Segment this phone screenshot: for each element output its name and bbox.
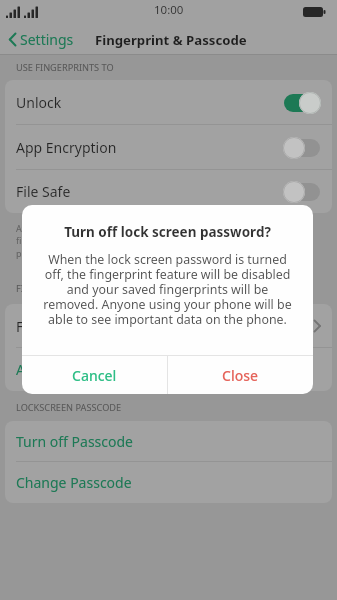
button[interactable] [283,181,321,203]
button[interactable]: Settings [8,30,74,49]
staticText: Settings [20,30,74,49]
staticText: Unlock [16,93,62,112]
staticText: 10:00 [154,2,184,18]
staticText: Turn off lock screen password? [22,223,313,241]
button[interactable] [283,92,321,114]
staticText: Add a Fingerprint [16,360,131,379]
staticText: FINGERPRINTS [16,282,80,295]
staticText: USE FINGERPRINTS TO [16,61,114,74]
button[interactable]: File Safe [5,170,332,213]
staticText: When the lock screen password is turned … [22,251,313,327]
staticText: Fingerprint & Passcode [95,31,247,49]
button[interactable]: Change Passcode [5,462,332,503]
button[interactable] [283,137,321,159]
button[interactable]: Add a Fingerprint [5,348,332,391]
button[interactable]: App Encryption [5,125,332,170]
button[interactable]: Turn off Passcode [5,421,332,462]
staticText: LOCKSCREEN PASSCODE [16,401,122,414]
staticText: After restarting your phone, or if your … [16,222,199,260]
staticText: Cancel [72,366,117,385]
button[interactable]: Unlock [5,80,332,125]
staticText: Close [222,366,259,385]
button[interactable]: Close [168,356,313,394]
staticText: Change Passcode [16,473,132,492]
staticText: Turn off Passcode [16,432,133,451]
button[interactable]: Cancel [22,356,167,394]
button[interactable]: Fingerprint 1 [5,304,332,348]
staticText: App Encryption [16,138,117,157]
staticText: File Safe [16,182,71,201]
staticText: Fingerprint 1 [16,317,102,336]
